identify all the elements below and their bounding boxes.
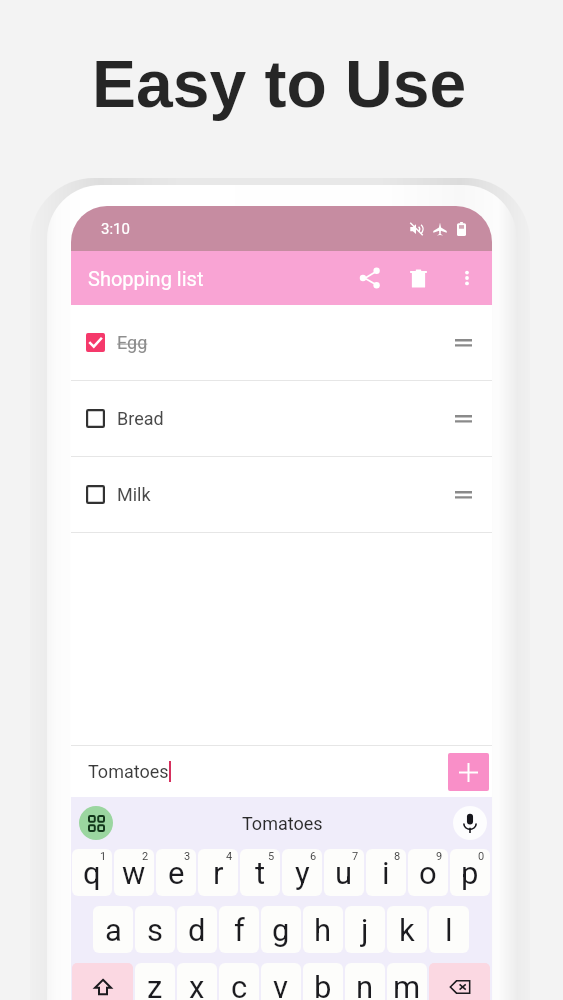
button[interactable]: Add item bbox=[448, 753, 489, 791]
staticText: t bbox=[255, 855, 266, 891]
staticText: 7 bbox=[352, 850, 359, 863]
button[interactable]: o bbox=[408, 849, 448, 896]
button[interactable]: x bbox=[177, 963, 217, 1000]
staticText: Milk bbox=[117, 484, 151, 505]
button[interactable]: j bbox=[345, 906, 385, 953]
button[interactable]: r bbox=[198, 849, 238, 896]
staticText: p bbox=[461, 855, 479, 891]
button[interactable]: i bbox=[366, 849, 406, 896]
staticText: k bbox=[399, 912, 415, 948]
button[interactable]: v bbox=[261, 963, 301, 1000]
staticText: e bbox=[168, 855, 185, 891]
staticText: w bbox=[122, 855, 146, 891]
button[interactable]: n bbox=[345, 963, 385, 1000]
button[interactable]: Tomatoes bbox=[71, 746, 448, 797]
button[interactable]: Keyboard apps bbox=[79, 806, 113, 840]
button[interactable]: Bread bbox=[71, 381, 492, 456]
staticText: Easy to Use bbox=[92, 47, 467, 121]
button[interactable]: g bbox=[261, 906, 301, 953]
staticText: Tomatoes bbox=[242, 813, 323, 834]
staticText: q bbox=[83, 855, 101, 891]
staticText: s bbox=[147, 912, 163, 948]
staticText: h bbox=[314, 912, 332, 948]
staticText: y bbox=[295, 855, 310, 891]
button[interactable]: Shift bbox=[72, 963, 133, 1000]
staticText: z bbox=[147, 969, 163, 1000]
staticText: 3 bbox=[184, 850, 191, 863]
staticText: 4 bbox=[226, 850, 233, 863]
button[interactable]: More options bbox=[443, 254, 491, 302]
staticText: a bbox=[105, 912, 122, 948]
button[interactable]: w bbox=[114, 849, 154, 896]
button[interactable]: a bbox=[93, 906, 133, 953]
staticText: n bbox=[356, 969, 374, 1000]
staticText: b bbox=[314, 969, 332, 1000]
staticText: 1 bbox=[100, 850, 107, 863]
button[interactable]: u bbox=[324, 849, 364, 896]
button[interactable]: p bbox=[450, 849, 490, 896]
staticText: 0 bbox=[478, 850, 485, 863]
staticText: c bbox=[231, 969, 248, 1000]
button[interactable]: t bbox=[240, 849, 280, 896]
staticText: j bbox=[361, 912, 369, 948]
staticText: 6 bbox=[310, 850, 317, 863]
button[interactable]: Egg bbox=[71, 305, 492, 380]
staticText: Egg bbox=[117, 332, 148, 353]
staticText: 2 bbox=[142, 850, 149, 863]
staticText: u bbox=[335, 855, 353, 891]
button[interactable]: e bbox=[156, 849, 196, 896]
button[interactable]: f bbox=[219, 906, 259, 953]
button[interactable]: Voice input bbox=[453, 806, 487, 840]
staticText: i bbox=[382, 855, 390, 891]
staticText: o bbox=[419, 855, 437, 891]
button[interactable]: l bbox=[429, 906, 469, 953]
staticText: 3:10 bbox=[101, 220, 130, 238]
button[interactable]: Share bbox=[346, 254, 394, 302]
button[interactable]: c bbox=[219, 963, 259, 1000]
staticText: d bbox=[188, 912, 206, 948]
button[interactable]: q bbox=[72, 849, 112, 896]
button[interactable]: b bbox=[303, 963, 343, 1000]
button[interactable]: y bbox=[282, 849, 322, 896]
button[interactable]: s bbox=[135, 906, 175, 953]
staticText: Shopping list bbox=[88, 267, 204, 290]
button[interactable]: Backspace bbox=[429, 963, 490, 1000]
staticText: Bread bbox=[117, 408, 164, 429]
button[interactable]: Milk bbox=[71, 457, 492, 532]
staticText: Tomatoes bbox=[88, 761, 169, 782]
staticText: 5 bbox=[268, 850, 275, 863]
button[interactable]: h bbox=[303, 906, 343, 953]
staticText: g bbox=[272, 912, 290, 948]
staticText: x bbox=[189, 969, 205, 1000]
button[interactable]: k bbox=[387, 906, 427, 953]
staticText: 8 bbox=[394, 850, 401, 863]
staticText: m bbox=[393, 969, 421, 1000]
button[interactable]: z bbox=[135, 963, 175, 1000]
staticText: 9 bbox=[436, 850, 443, 863]
staticText: f bbox=[234, 912, 245, 948]
staticText: r bbox=[213, 855, 224, 891]
button[interactable]: Delete bbox=[394, 254, 442, 302]
button[interactable]: m bbox=[387, 963, 427, 1000]
staticText: v bbox=[273, 969, 289, 1000]
button[interactable]: d bbox=[177, 906, 217, 953]
staticText: l bbox=[445, 912, 453, 948]
button[interactable]: Tomatoes bbox=[207, 797, 357, 849]
